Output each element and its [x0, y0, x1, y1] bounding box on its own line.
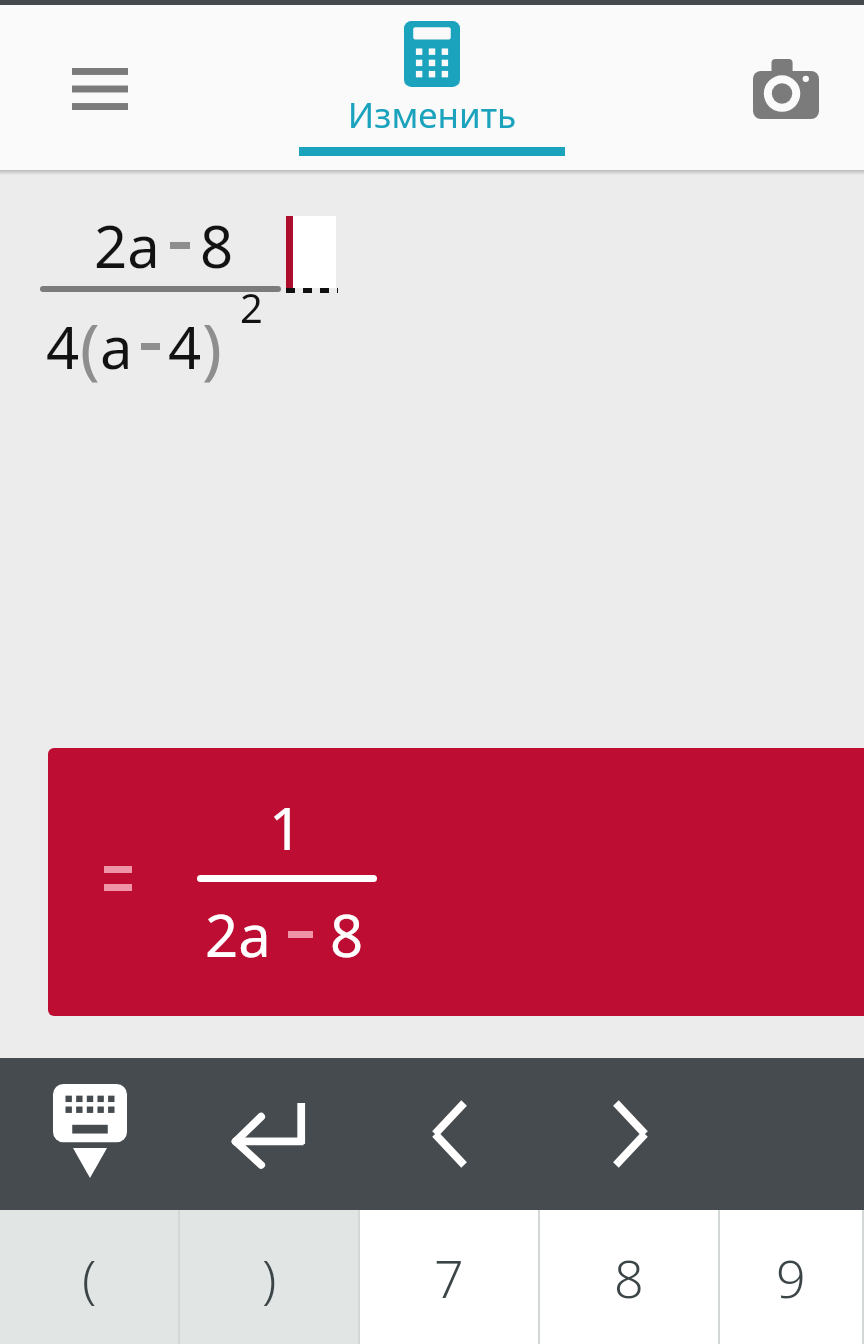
- button[interactable]: Hide keyboard: [44, 1084, 136, 1184]
- button[interactable]: Next: [584, 1092, 676, 1176]
- staticText: (: [80, 301, 100, 391]
- staticText: 8: [330, 895, 364, 974]
- staticText: 4: [168, 307, 202, 386]
- staticText: 4: [46, 307, 80, 386]
- staticText: 2a: [205, 895, 271, 974]
- button[interactable]: Camera: [738, 41, 834, 137]
- staticText: 9: [776, 1242, 806, 1313]
- staticText: 2a: [94, 206, 160, 285]
- button[interactable]: Previous: [404, 1092, 496, 1176]
- button[interactable]: ): [180, 1210, 358, 1344]
- staticText: 8: [614, 1242, 644, 1313]
- button[interactable]: Enter: [210, 1092, 322, 1176]
- button[interactable]: 8: [540, 1210, 718, 1344]
- staticText: 1: [269, 788, 303, 867]
- button[interactable]: Menu: [54, 47, 146, 131]
- staticText: 7: [434, 1242, 464, 1313]
- button[interactable]: Изменить: [299, 21, 565, 156]
- staticText: ): [262, 1242, 277, 1313]
- button[interactable]: 1: [48, 748, 864, 1016]
- button[interactable]: 9: [720, 1210, 862, 1344]
- button[interactable]: (: [0, 1210, 178, 1344]
- staticText: 8: [200, 206, 234, 285]
- staticText: (: [82, 1242, 97, 1313]
- staticText: a: [100, 307, 133, 386]
- button[interactable]: 7: [360, 1210, 538, 1344]
- staticText: Изменить: [299, 91, 565, 139]
- staticText: 2: [240, 280, 263, 334]
- staticText: ): [202, 301, 222, 391]
